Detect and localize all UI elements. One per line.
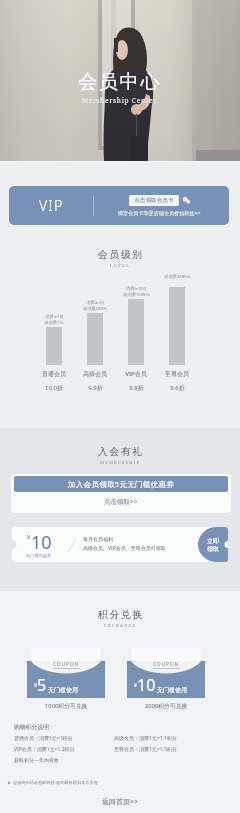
staticText: 5 <box>37 674 47 696</box>
staticText: 消费≥10次 <box>126 286 147 292</box>
staticText: 获取积分一年内有效 <box>14 757 59 763</box>
button[interactable]: ¥ <box>127 648 205 698</box>
staticText: ¥ <box>27 533 31 540</box>
staticText: 消费≥3次 <box>86 300 105 306</box>
staticText: 至尊会员：消费1元=1.5积分 <box>114 746 177 753</box>
staticText: EXCHANGE <box>104 623 137 629</box>
staticText: 会员中心 <box>78 70 162 94</box>
staticText: 9.9折 <box>88 384 103 392</box>
staticText: ¥ <box>134 682 137 689</box>
staticText: Membership Center <box>82 96 158 105</box>
other: Receive member card <box>182 196 191 205</box>
button[interactable]: 立即 <box>198 527 228 562</box>
staticText: 无门槛优惠券 <box>26 553 52 558</box>
staticText: 10.0折 <box>45 384 63 392</box>
staticText: VIP会员：消费1元=1.2积分 <box>14 746 75 753</box>
staticText: 加入会员领取5元无门槛优惠券 <box>68 479 174 489</box>
staticText: 或消费288元 <box>83 306 107 312</box>
staticText: COUPON <box>53 661 80 668</box>
staticText: 立即 <box>207 537 219 545</box>
staticText: COUPON <box>153 661 180 668</box>
staticText: 10 <box>137 674 156 696</box>
staticText: 普通会员：消费1元=1积分 <box>14 735 73 742</box>
staticText: 10 <box>31 530 52 555</box>
staticText: 绑定会员卡享受店铺会员折扣权益>> <box>118 210 201 217</box>
staticText: 或消费4980元 <box>164 274 191 280</box>
staticText: ¥ <box>34 682 37 689</box>
staticText: 2000积分可兑换 <box>145 702 188 710</box>
button[interactable]: 返回首页>> <box>0 792 240 812</box>
staticText: 无门槛使用 <box>157 686 187 694</box>
staticText: 应最终的活动有解释权·最终解释权归本店所有 <box>13 780 98 786</box>
staticText: 高级会员、VIP会员、至尊会员可领取 <box>83 545 166 552</box>
staticText: 9.6折 <box>170 384 185 392</box>
staticText: 点击领取>> <box>104 497 138 506</box>
button[interactable]: 点击领取会员卡 <box>129 195 179 206</box>
button[interactable]: VIP <box>9 186 229 225</box>
staticText: 高级会员 <box>83 370 107 378</box>
staticText: 每月会员福利 <box>83 536 113 542</box>
staticText: 高级会员：消费1元=1.1积分 <box>114 735 177 742</box>
staticText: 1000积分可兑换 <box>45 702 88 710</box>
staticText: 至尊会员 <box>165 370 189 378</box>
staticText: 会员级别 <box>97 248 143 261</box>
staticText: 返回首页>> <box>102 797 139 807</box>
button[interactable]: ¥ <box>12 527 228 562</box>
staticText: LEVEL <box>110 263 131 269</box>
staticText: 领取 <box>207 545 219 553</box>
staticText: VIP <box>39 196 64 215</box>
staticText: 积分兑换 <box>97 608 143 621</box>
staticText: VIP会员 <box>125 370 147 378</box>
staticText: 消费≥1次 <box>45 314 64 320</box>
staticText: 无门槛使用 <box>48 686 78 694</box>
staticText: 普通会员 <box>42 370 66 378</box>
staticText: 购物积分说明： <box>14 723 55 730</box>
staticText: 点击领取会员卡 <box>134 197 174 204</box>
staticText: 或消费1588元 <box>123 292 150 298</box>
staticText: 9.8折 <box>129 384 144 392</box>
button[interactable]: ¥ <box>27 648 105 698</box>
staticText: 或消费1元 <box>44 320 64 326</box>
button[interactable]: 加入会员领取5元无门槛优惠券 <box>11 474 231 513</box>
staticText: 入会有礼 <box>97 445 143 458</box>
staticText: MEMBERSHIP <box>100 460 141 466</box>
